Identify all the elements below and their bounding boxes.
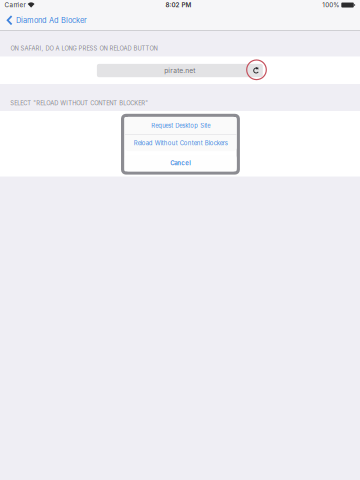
staticText: Diamond Ad Blocker xyxy=(16,16,87,25)
staticText: ON SAFARI, DO A LONG PRESS ON RELOAD BUT… xyxy=(10,45,157,52)
staticText: Cancel xyxy=(170,159,191,167)
staticText: Reload Without Content Blockers xyxy=(134,139,228,147)
button[interactable]: Reload Without Content Blockers xyxy=(125,135,237,151)
staticText: 8:02 PM xyxy=(165,1,191,9)
staticText: SELECT "RELOAD WITHOUT CONTENT BLOCKER" xyxy=(10,100,148,107)
staticText: pirate.net xyxy=(164,66,195,75)
button[interactable]: Diamond Ad Blocker xyxy=(0,10,93,30)
staticText: Carrier xyxy=(4,1,25,9)
button[interactable]: Cancel xyxy=(125,155,237,171)
staticText: Request Desktop Site xyxy=(151,122,210,129)
button[interactable]: Request Desktop Site xyxy=(125,117,237,134)
button[interactable]: Reload xyxy=(249,64,263,77)
staticText: 100% xyxy=(322,1,339,9)
